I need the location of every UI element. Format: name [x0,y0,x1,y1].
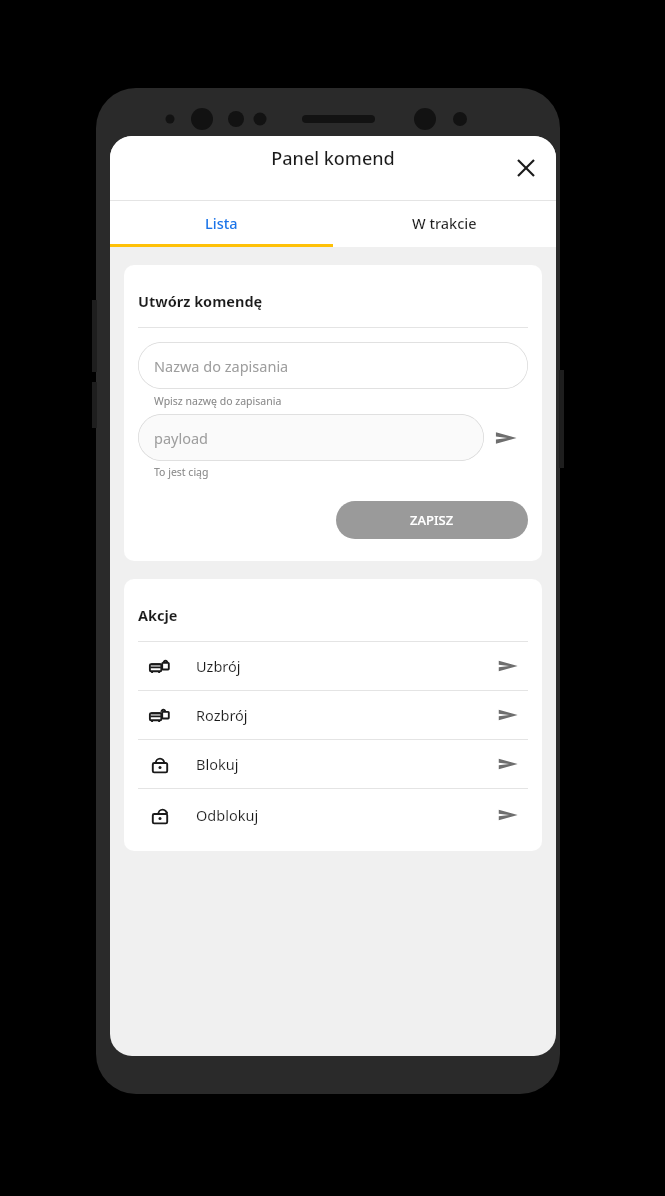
button[interactable]: Zamknij [504,146,548,190]
staticText: To jest ciąg [154,465,209,479]
other: Odblokuj [488,795,528,835]
other: Rozbrój [488,695,528,735]
staticText: Panel komend [271,146,395,171]
staticText: Nazwa do zapisania [154,356,289,376]
button[interactable]: Odblokuj [124,789,542,841]
button[interactable]: Lista [110,201,333,244]
button[interactable]: Blokuj [124,740,542,788]
button[interactable]: W trakcie [333,201,556,244]
staticText: Blokuj [196,754,239,774]
button[interactable]: Uzbrój [124,642,542,690]
staticText: Odblokuj [196,805,259,825]
staticText: Uzbrój [196,656,241,676]
staticText: Wpisz nazwę do zapisania [154,394,282,408]
staticText: Lista [205,213,238,233]
other: Blokuj [488,744,528,784]
button[interactable]: payload [138,414,484,461]
staticText: ZAPISZ [410,511,454,529]
staticText: Rozbrój [196,705,248,725]
staticText: Utwórz komendę [138,291,263,311]
other: Uzbrój [488,646,528,686]
staticText: Akcje [138,605,178,625]
staticText: payload [154,428,209,448]
button[interactable]: Nazwa do zapisania [138,342,528,389]
button[interactable]: Rozbrój [124,691,542,739]
button[interactable]: ZAPISZ [336,501,528,539]
button[interactable]: Wyślij payload [484,416,528,460]
staticText: W trakcie [412,213,477,233]
